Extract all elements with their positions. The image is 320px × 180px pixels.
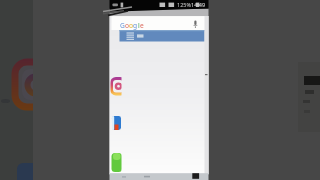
staticText: e <box>140 21 144 30</box>
staticText: o <box>129 21 133 30</box>
staticText: 125% <box>177 1 192 8</box>
staticText: g <box>133 21 138 30</box>
staticText: o <box>125 21 129 30</box>
staticText: 14:49 <box>191 1 206 8</box>
staticText: G <box>120 21 125 30</box>
staticText: l <box>138 21 140 30</box>
